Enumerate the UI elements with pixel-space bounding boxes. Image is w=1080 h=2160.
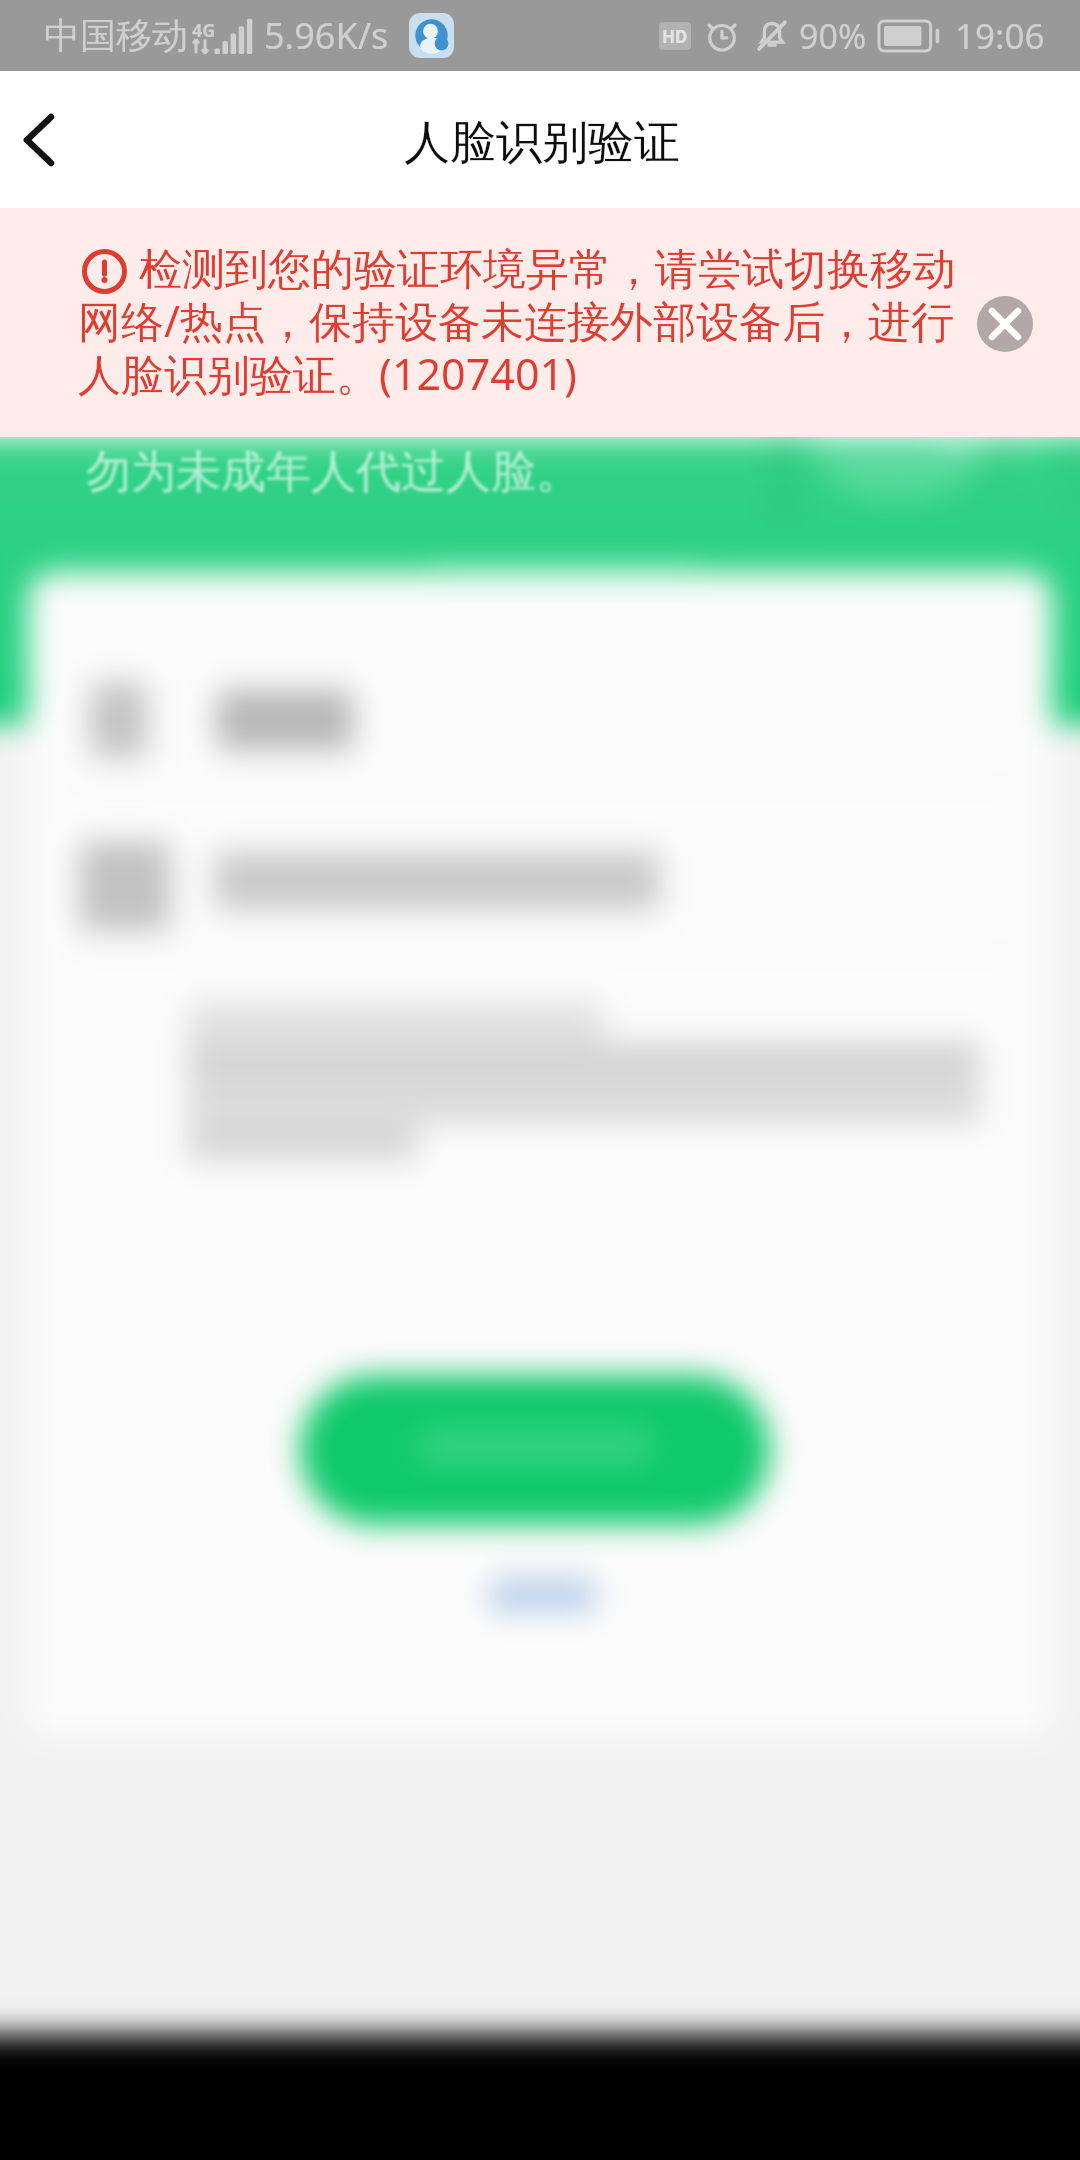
staticText: HD (662, 25, 688, 48)
staticText: 19:06 (955, 12, 1045, 60)
staticText: 5.96K/s (264, 11, 389, 60)
staticText: 4G (192, 18, 216, 43)
staticText: 中国移动 (44, 13, 188, 58)
staticText: 检测到您的验证环境异常，请尝试切换移动网络/热点，保持设备未连接外部设备后，进行… (78, 243, 975, 403)
button[interactable]: 开始人脸识别验证 (300, 1375, 770, 1525)
button[interactable]: Close (977, 296, 1033, 352)
staticText: 勿为未成年人代过人脸。 (86, 444, 581, 501)
staticText: 90% (799, 13, 867, 59)
button[interactable]: Back (0, 85, 110, 195)
button[interactable]: 遇到问题 (460, 1570, 620, 1620)
staticText: 人脸识别验证 (404, 114, 680, 172)
